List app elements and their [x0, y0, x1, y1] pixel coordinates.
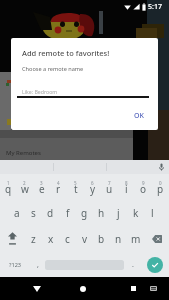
staticText: b	[98, 232, 105, 246]
staticText: Like: Bedroom	[22, 88, 58, 95]
staticText: h	[98, 206, 105, 220]
button[interactable]: Home	[71, 277, 95, 300]
button[interactable]: v	[76, 226, 93, 252]
button[interactable]: Space	[45, 252, 124, 277]
button[interactable]: .	[125, 252, 141, 277]
button[interactable]: Recents	[121, 277, 145, 300]
staticText: p	[157, 182, 164, 196]
button[interactable]: 1	[0, 174, 16, 200]
staticText: 0	[159, 180, 162, 186]
staticText: o	[140, 182, 147, 196]
button[interactable]: 6	[84, 174, 101, 200]
staticText: Choose a remote name	[22, 65, 84, 73]
button[interactable]: 2	[16, 174, 33, 200]
staticText: i	[125, 182, 128, 196]
button[interactable]: Switch keyboard	[143, 277, 163, 300]
staticText: y	[90, 182, 96, 196]
button[interactable]: f	[59, 200, 76, 226]
staticText: ,	[37, 260, 39, 270]
button[interactable]: 9	[135, 174, 152, 200]
button[interactable]: 5	[67, 174, 84, 200]
button[interactable]: h	[93, 200, 110, 226]
button[interactable]: ?123	[0, 252, 30, 277]
button[interactable]: n	[110, 226, 127, 252]
button[interactable]: 3	[33, 174, 50, 200]
staticText: a	[14, 206, 20, 220]
button[interactable]: x	[42, 226, 59, 252]
staticText: n	[115, 232, 122, 246]
staticText: 7	[108, 180, 111, 186]
staticText: v	[82, 232, 88, 246]
staticText: k	[133, 206, 139, 220]
staticText: 8	[125, 180, 128, 186]
staticText: 5	[74, 180, 77, 186]
button[interactable]: OK	[124, 106, 154, 126]
staticText: ?123	[9, 261, 22, 269]
button[interactable]: m	[127, 226, 144, 252]
staticText: Add remote to favorites!	[22, 48, 110, 58]
staticText: z	[31, 232, 36, 246]
button[interactable]: ,	[30, 252, 45, 277]
staticText: c	[65, 232, 70, 246]
staticText: .	[132, 260, 134, 270]
button[interactable]: Voice input	[154, 160, 168, 174]
button[interactable]: g	[76, 200, 93, 226]
button[interactable]: k	[127, 200, 144, 226]
button[interactable]: l	[144, 200, 161, 226]
staticText: My Remotes	[6, 149, 41, 157]
staticText: u	[106, 182, 113, 196]
button[interactable]: 7	[101, 174, 118, 200]
button[interactable]: Backspace	[144, 226, 169, 252]
staticText: OK	[134, 111, 144, 121]
button[interactable]: d	[42, 200, 59, 226]
button[interactable]: b	[93, 226, 110, 252]
staticText: 1	[7, 180, 10, 186]
staticText: s	[31, 206, 36, 220]
button[interactable]: 4	[50, 174, 67, 200]
button[interactable]: Back	[25, 277, 49, 300]
button[interactable]: z	[25, 226, 42, 252]
button[interactable]: c	[59, 226, 76, 252]
staticText: w	[21, 182, 29, 196]
staticText: d	[47, 206, 54, 220]
staticText: 5:17	[148, 2, 162, 12]
staticText: 6	[91, 180, 94, 186]
staticText: 2	[23, 180, 26, 186]
staticText: q	[5, 182, 12, 196]
button[interactable]: j	[110, 200, 127, 226]
staticText: l	[151, 206, 154, 220]
button[interactable]: 8	[118, 174, 135, 200]
staticText: g	[81, 206, 88, 220]
staticText: 3	[40, 180, 43, 186]
staticText: t	[74, 182, 78, 196]
staticText: 4	[57, 180, 60, 186]
staticText: m	[131, 232, 141, 246]
button[interactable]: a	[8, 200, 25, 226]
staticText: r	[56, 182, 61, 196]
staticText: x	[48, 232, 54, 246]
staticText: e	[39, 182, 45, 196]
button[interactable]: Shift	[0, 226, 25, 252]
button[interactable]: Enter	[141, 252, 169, 277]
button[interactable]: 0	[152, 174, 169, 200]
staticText: f	[66, 206, 70, 220]
button[interactable]: s	[25, 200, 42, 226]
staticText: j	[117, 206, 120, 220]
staticText: 9	[142, 180, 145, 186]
